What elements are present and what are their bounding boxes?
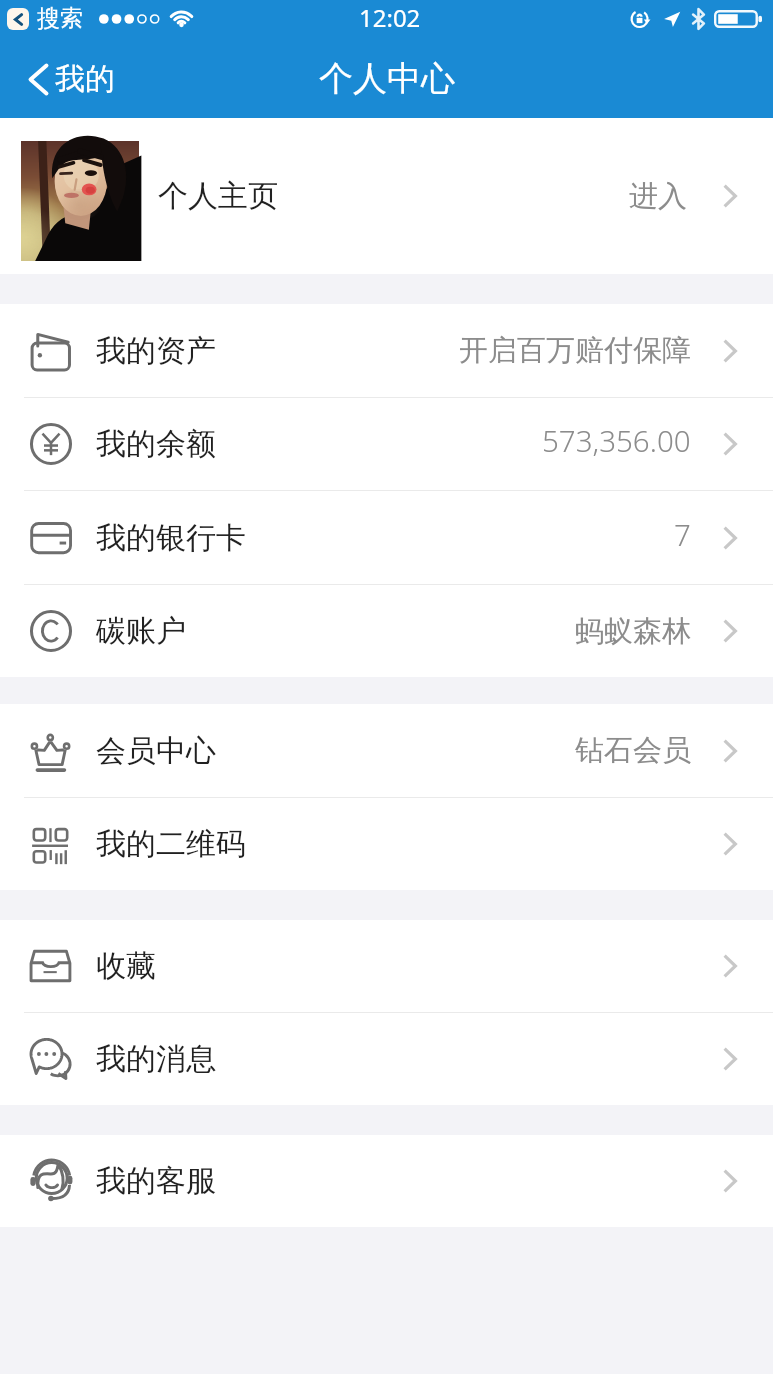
staticText: 收藏 [96,947,156,985]
button[interactable]: Back to 搜索 [7,8,29,30]
staticText: 进入 [629,178,687,215]
staticText: 我的消息 [96,1040,216,1078]
staticText: 我的银行卡 [96,519,246,557]
staticText: 我的资产 [96,332,216,370]
staticText: 我的客服 [96,1162,216,1200]
button[interactable]: 我的资产 [0,304,773,397]
button[interactable]: 个人主页 [0,118,773,274]
button[interactable]: 我的消息 [0,1013,773,1105]
staticText: 我的余额 [96,425,216,463]
button[interactable]: 会员中心 [0,704,773,797]
staticText: 我的二维码 [96,825,246,863]
staticText: 搜索 [37,4,83,33]
staticText: 7 [674,514,691,554]
button[interactable]: 我的余额 [0,398,773,490]
staticText: 12:02 [359,1,421,34]
staticText: 我的 [55,60,115,98]
button[interactable]: 我的银行卡 [0,491,773,584]
staticText: 个人主页 [158,177,278,215]
staticText: 蚂蚁森林 [575,613,691,650]
staticText: 碳账户 [96,612,186,650]
staticText: 个人中心 [319,57,455,100]
staticText: 钻石会员 [575,732,691,769]
button[interactable]: 返回我的 [0,52,133,106]
button[interactable]: 碳账户 [0,585,773,677]
staticText: 会员中心 [96,732,216,770]
staticText: 573,356.00 [542,420,691,460]
button[interactable]: 收藏 [0,920,773,1012]
staticText: 开启百万赔付保障 [459,332,691,369]
button[interactable]: 我的二维码 [0,798,773,890]
button[interactable]: 我的客服 [0,1135,773,1227]
